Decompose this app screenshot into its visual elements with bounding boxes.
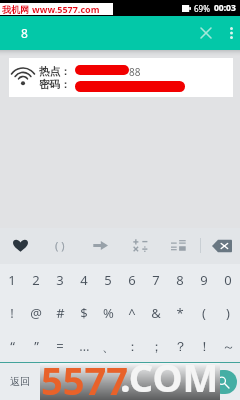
- staticText: ”: [34, 337, 39, 355]
- button[interactable]: ？: [168, 329, 192, 362]
- staticText: 69%: [194, 3, 210, 14]
- staticText: 3: [56, 271, 64, 289]
- staticText: 1: [8, 271, 16, 289]
- button[interactable]: 4: [72, 264, 96, 296]
- button[interactable]: ): [216, 296, 240, 329]
- button[interactable]: Close: [189, 16, 223, 50]
- staticText: ？: [174, 338, 187, 354]
- button[interactable]: 2: [24, 264, 48, 296]
- staticText: 返回: [10, 375, 30, 388]
- staticText: “: [10, 337, 15, 355]
- button[interactable]: 3: [48, 264, 72, 296]
- button[interactable]: 8: [168, 264, 192, 296]
- button[interactable]: 返回: [0, 363, 40, 400]
- staticText: 我机网: [2, 4, 29, 15]
- staticText: 0: [224, 271, 232, 289]
- button[interactable]: ～: [216, 329, 240, 362]
- staticText: .COM: [120, 353, 219, 398]
- staticText: 密码：: [39, 78, 71, 91]
- button[interactable]: !: [0, 296, 24, 329]
- button[interactable]: 5: [96, 264, 120, 296]
- button[interactable]: 0: [216, 264, 240, 296]
- staticText: …: [79, 337, 90, 355]
- button[interactable]: Math symbols: [122, 228, 158, 263]
- staticText: ^: [128, 304, 136, 322]
- staticText: 8: [176, 271, 184, 289]
- staticText: %: [103, 304, 114, 322]
- button[interactable]: More options: [223, 16, 240, 50]
- staticText: @: [30, 304, 42, 322]
- staticText: 2: [32, 271, 40, 289]
- button[interactable]: Clipboard: [160, 228, 196, 263]
- staticText: =: [56, 337, 64, 355]
- button[interactable]: ！: [192, 329, 216, 362]
- staticText: www.5577.com: [32, 3, 100, 15]
- button[interactable]: 1: [0, 264, 24, 296]
- button[interactable]: 9: [192, 264, 216, 296]
- button[interactable]: Emoji: [2, 228, 38, 263]
- staticText: ): [226, 304, 230, 322]
- staticText: ：: [126, 338, 139, 354]
- button[interactable]: %: [96, 296, 120, 329]
- button[interactable]: ：: [120, 329, 144, 362]
- staticText: $: [80, 304, 88, 322]
- button[interactable]: 6: [120, 264, 144, 296]
- staticText: 4: [80, 271, 88, 289]
- button[interactable]: Search: [206, 363, 240, 400]
- staticText: (: [202, 304, 206, 322]
- button[interactable]: ^: [120, 296, 144, 329]
- button[interactable]: 、: [96, 329, 120, 362]
- button[interactable]: ”: [24, 329, 48, 362]
- staticText: 8: [21, 25, 28, 41]
- staticText: 7: [152, 271, 160, 289]
- staticText: 、: [102, 338, 115, 354]
- staticText: ！: [198, 338, 211, 354]
- button[interactable]: &: [144, 296, 168, 329]
- staticText: 6: [128, 271, 136, 289]
- staticText: &: [151, 304, 161, 322]
- button[interactable]: #: [48, 296, 72, 329]
- button[interactable]: Move cursor: [82, 228, 118, 263]
- staticText: 5: [104, 271, 112, 289]
- staticText: 5577: [41, 354, 128, 400]
- button[interactable]: “: [0, 329, 24, 362]
- button[interactable]: 热点：: [9, 58, 233, 97]
- staticText: #: [56, 304, 65, 322]
- button[interactable]: @: [24, 296, 48, 329]
- staticText: 88: [129, 65, 141, 79]
- staticText: *: [176, 304, 184, 322]
- button[interactable]: (: [192, 296, 216, 329]
- button[interactable]: =: [48, 329, 72, 362]
- button[interactable]: Brackets: [42, 228, 78, 263]
- staticText: !: [10, 304, 14, 322]
- staticText: 9: [200, 271, 208, 289]
- staticText: 热点：: [39, 65, 71, 78]
- staticText: ( ): [55, 238, 65, 253]
- button[interactable]: ；: [144, 329, 168, 362]
- button[interactable]: …: [72, 329, 96, 362]
- staticText: 00:03: [214, 2, 236, 14]
- button[interactable]: $: [72, 296, 96, 329]
- button[interactable]: *: [168, 296, 192, 329]
- button[interactable]: 7: [144, 264, 168, 296]
- button[interactable]: Backspace: [204, 228, 240, 263]
- staticText: ；: [150, 338, 163, 354]
- staticText: ～: [222, 338, 235, 354]
